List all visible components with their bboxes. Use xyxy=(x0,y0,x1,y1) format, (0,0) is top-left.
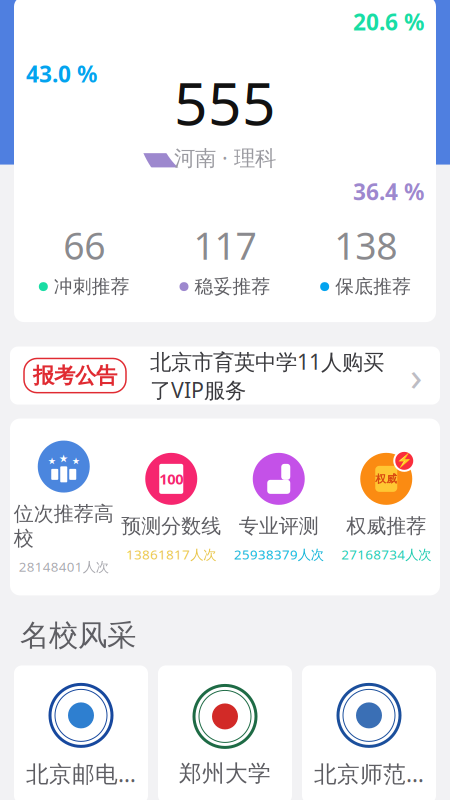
button[interactable]: 郑州大学 xyxy=(158,665,292,800)
staticText: 117 xyxy=(193,221,256,270)
button[interactable]: 北京邮电… xyxy=(14,665,148,800)
staticText: 权威推荐 xyxy=(346,514,426,538)
staticText: 66 xyxy=(63,221,105,270)
staticText: ⚡ xyxy=(396,453,413,468)
staticText: 20.6 % xyxy=(353,7,424,37)
staticText: 保底推荐 xyxy=(335,275,411,298)
button[interactable]: 专业评测 xyxy=(225,441,332,573)
staticText: 北京市育英中学11人购买了VIP服务 xyxy=(150,347,384,404)
staticText: ★ xyxy=(72,456,80,466)
staticText: 报考公告 xyxy=(33,362,117,389)
staticText: 预测分数线 xyxy=(121,514,221,538)
staticText: 北京师范… xyxy=(314,758,424,788)
button[interactable]: 权威 xyxy=(332,441,440,573)
staticText: 位次推荐高校 xyxy=(14,502,114,551)
staticText: 138 xyxy=(334,221,397,270)
staticText: 43.0 % xyxy=(26,59,97,89)
staticText: 专业评测 xyxy=(239,514,319,538)
staticText: 28148401人次 xyxy=(19,558,109,575)
staticText: ★ xyxy=(48,456,56,466)
staticText: 555 xyxy=(174,63,276,141)
button[interactable]: 北京师范… xyxy=(302,665,436,800)
staticText: 名校风采 xyxy=(20,617,136,653)
staticText: ★ xyxy=(59,452,69,465)
staticText: 27168734人次 xyxy=(341,545,431,563)
staticText: 100 xyxy=(159,469,183,489)
staticText: 13861817人次 xyxy=(126,545,216,563)
staticText: 稳妥推荐 xyxy=(194,275,270,298)
staticText: 权威 xyxy=(375,472,397,485)
button[interactable]: ★ xyxy=(10,429,117,585)
button[interactable]: 100 xyxy=(117,441,225,573)
staticText: 25938379人次 xyxy=(234,545,324,563)
staticText: 36.4 % xyxy=(353,176,424,207)
staticText: 北京邮电… xyxy=(26,758,136,788)
staticText: 冲刺推荐 xyxy=(54,275,130,298)
staticText: 河南 · 理科 xyxy=(174,143,276,172)
staticText: 郑州大学 xyxy=(179,760,271,787)
button[interactable]: 报考公告 xyxy=(10,347,440,405)
staticText: › xyxy=(410,349,422,402)
